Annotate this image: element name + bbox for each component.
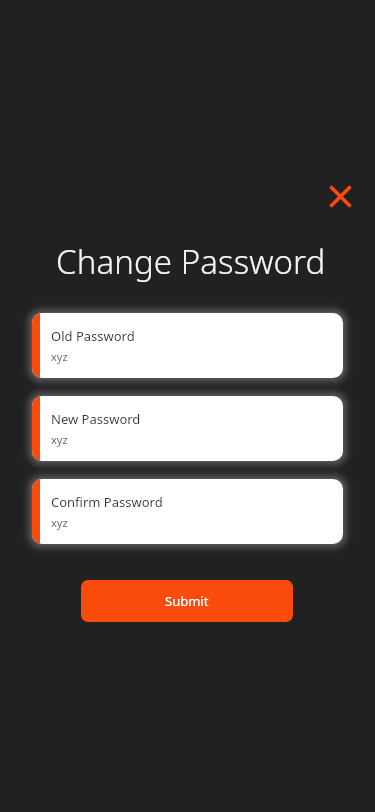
button[interactable]: Old Password (21, 302, 354, 389)
staticText: Change Password (56, 239, 326, 284)
staticText: xyz (51, 432, 68, 447)
staticText: xyz (51, 515, 68, 530)
button[interactable]: Confirm Password (21, 468, 354, 555)
button[interactable]: New Password (21, 385, 354, 472)
button[interactable]: Close (318, 174, 362, 218)
staticText: xyz (51, 349, 68, 364)
staticText: Confirm Password (51, 493, 163, 511)
staticText: Submit (165, 592, 209, 610)
staticText: New Password (51, 410, 141, 428)
staticText: Old Password (51, 327, 135, 345)
button[interactable]: Submit (81, 580, 293, 622)
